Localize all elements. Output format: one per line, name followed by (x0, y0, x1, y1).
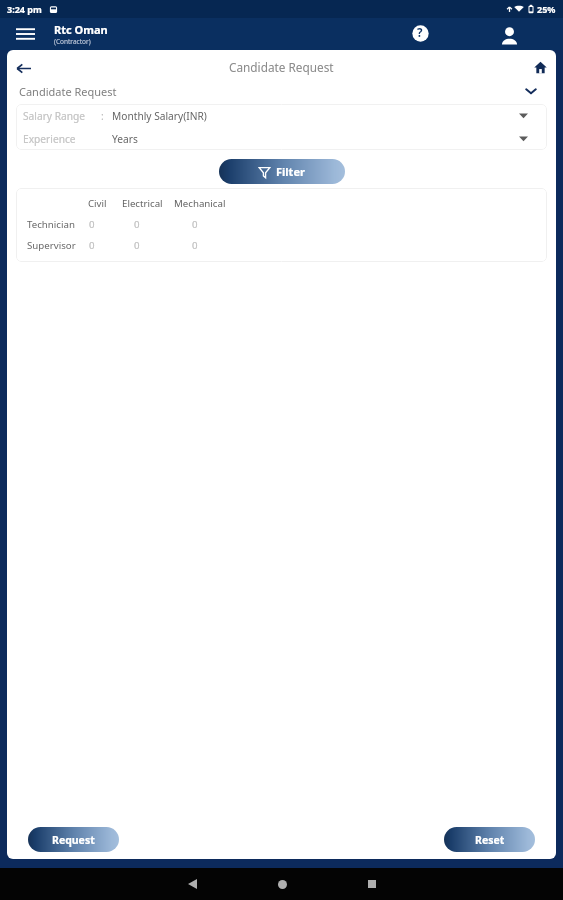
staticText: 0 (192, 239, 198, 252)
staticText: (Contractor) (54, 37, 91, 46)
staticText: Request (52, 833, 95, 847)
button[interactable]: Salary Range (23, 104, 541, 127)
button[interactable]: Filter (219, 159, 345, 184)
staticText: Electrical (122, 197, 163, 210)
button[interactable]: Back (170, 868, 214, 900)
staticText: 0 (192, 218, 198, 231)
button[interactable]: Request (28, 827, 119, 852)
button[interactable]: Home (260, 868, 304, 900)
staticText: 25% (537, 3, 556, 15)
staticText: Rtc Oman (54, 22, 108, 37)
staticText: Years (112, 132, 138, 146)
button[interactable]: Reset (444, 827, 535, 852)
staticText: Mechanical (174, 197, 226, 210)
staticText: Experience (23, 132, 76, 146)
staticText: Filter (276, 164, 305, 179)
staticText: Monthly Salary(INR) (112, 109, 207, 123)
button[interactable]: Profile (494, 20, 524, 50)
staticText: Civil (88, 197, 107, 210)
staticText: Reset (475, 833, 505, 847)
staticText: : (101, 109, 104, 123)
button[interactable]: Home (527, 54, 553, 80)
staticText: Candidate Request (19, 84, 117, 99)
staticText: 0 (134, 239, 140, 252)
button[interactable]: Recents (350, 868, 394, 900)
staticText: Technician (27, 218, 75, 231)
staticText: 0 (134, 218, 140, 231)
staticText: Salary Range (23, 109, 86, 123)
button[interactable]: Back (11, 56, 35, 80)
button[interactable]: Experience (23, 127, 541, 150)
staticText: Candidate Request (229, 59, 334, 75)
staticText: 3:24 pm (7, 3, 42, 15)
staticText: 0 (89, 218, 95, 231)
staticText: ? (417, 25, 423, 41)
staticText: 0 (89, 239, 95, 252)
staticText: Supervisor (27, 239, 76, 252)
button[interactable]: Menu (10, 18, 40, 50)
button[interactable]: Candidate Request (19, 81, 537, 101)
button[interactable]: Help (405, 18, 435, 48)
